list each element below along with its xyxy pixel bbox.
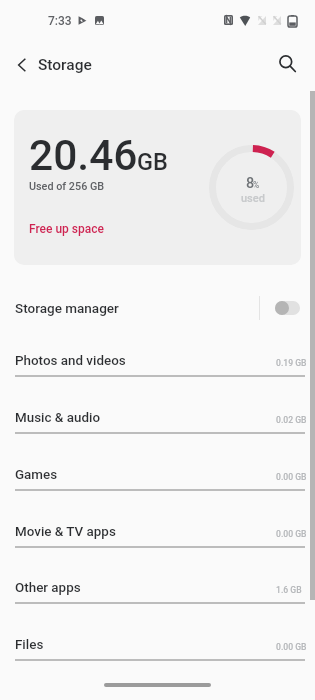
button[interactable]: Storage manager (0, 284, 315, 332)
staticText: Photos and videos (15, 353, 126, 369)
staticText: 8 (246, 175, 255, 192)
staticText: Games (15, 467, 58, 483)
staticText: 0.00 GB (276, 472, 307, 482)
button[interactable]: Music & audio (0, 392, 315, 438)
button[interactable]: Back (6, 49, 38, 81)
button[interactable]: Other apps (0, 562, 315, 608)
staticText: 7:33 (48, 14, 72, 28)
button[interactable]: Search (271, 47, 303, 79)
staticText: 1.6 GB (276, 585, 302, 595)
button[interactable]: Files (0, 619, 315, 665)
staticText: Music & audio (15, 410, 101, 426)
button[interactable]: Movie & TV apps (0, 506, 315, 552)
staticText: % (253, 180, 260, 190)
button[interactable]: Storage (37, 47, 91, 75)
staticText: 0.02 GB (276, 415, 307, 425)
button[interactable]: Games (0, 449, 315, 495)
staticText: Other apps (15, 580, 81, 596)
staticText: Storage (38, 56, 92, 74)
staticText: GB (137, 148, 168, 176)
staticText: 20.46 (29, 131, 138, 181)
staticText: Free up space (29, 222, 105, 236)
staticText: Used of 256 GB (29, 180, 105, 193)
staticText: used (241, 192, 265, 205)
staticText: Storage manager (15, 300, 119, 316)
staticText: Files (15, 637, 44, 653)
staticText: Movie & TV apps (15, 524, 116, 540)
staticText: 0.19 GB (276, 358, 307, 368)
staticText: 0.00 GB (276, 529, 307, 539)
button[interactable]: Free up space (27, 217, 107, 235)
staticText: 0.00 GB (276, 642, 307, 652)
button[interactable]: Photos and videos (0, 335, 315, 381)
